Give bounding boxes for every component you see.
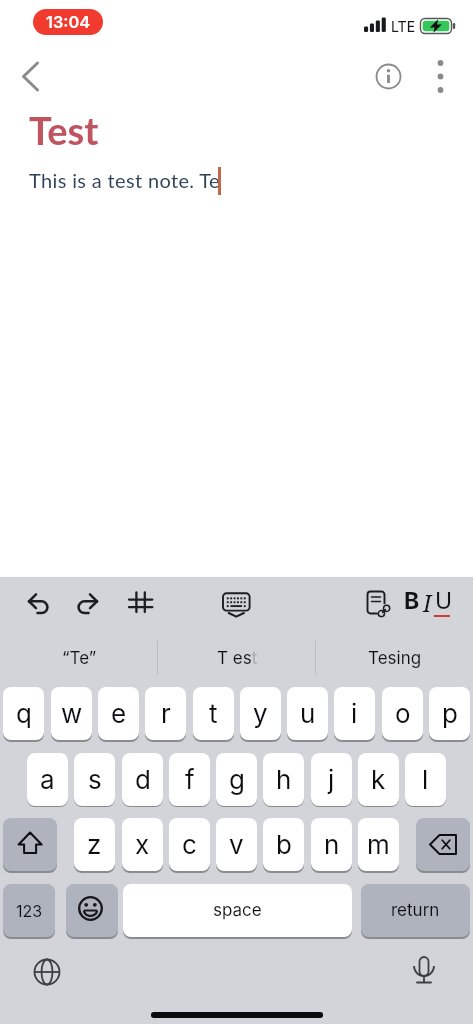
button[interactable]: g [216, 753, 257, 806]
button[interactable] [12, 56, 52, 96]
staticText: a [40, 764, 55, 795]
button[interactable]: a [27, 753, 68, 806]
staticText: z [87, 829, 102, 860]
button[interactable]: d [122, 753, 163, 806]
button[interactable]: z [74, 818, 115, 871]
button[interactable]: q [3, 687, 44, 740]
staticText: h [276, 764, 292, 795]
staticText: i [351, 698, 358, 729]
button[interactable]: k [358, 753, 399, 806]
staticText: u [300, 698, 316, 729]
staticText: l [422, 764, 429, 795]
staticText: m [367, 829, 390, 860]
staticText: j [328, 764, 335, 795]
staticText: f [185, 764, 195, 795]
button[interactable]: y [240, 687, 281, 740]
staticText: I [423, 587, 432, 618]
button[interactable]: p [429, 687, 470, 740]
button[interactable] [66, 884, 118, 937]
staticText: This is a test note. Te [29, 168, 220, 192]
button[interactable]: b [263, 818, 304, 871]
button[interactable] [28, 953, 66, 991]
staticText: r [161, 698, 171, 729]
staticText: d [135, 764, 151, 795]
staticText: e [111, 698, 127, 729]
staticText: q [16, 698, 32, 729]
staticText: p [442, 698, 458, 729]
button[interactable]: T est [158, 640, 316, 676]
button[interactable]: space [123, 884, 352, 937]
button[interactable]: l [405, 753, 446, 806]
staticText: b [276, 829, 292, 860]
button[interactable]: x [122, 818, 163, 871]
staticText: B [404, 587, 420, 615]
button[interactable] [416, 818, 470, 871]
staticText: “Te” [62, 648, 97, 669]
button[interactable]: m [358, 818, 399, 871]
button[interactable]: 13:04 [33, 9, 103, 35]
button[interactable]: o [382, 687, 423, 740]
staticText: x [135, 829, 150, 860]
button[interactable]: f [169, 753, 210, 806]
staticText: LTE [391, 18, 416, 35]
button[interactable]: e [98, 687, 139, 740]
staticText: Test [29, 107, 99, 153]
staticText: g [229, 764, 245, 795]
button[interactable]: i [334, 687, 375, 740]
button[interactable]: j [311, 753, 352, 806]
staticText: t [209, 698, 218, 729]
staticText: Tesing [368, 648, 422, 669]
button[interactable]: r [145, 687, 186, 740]
staticText: y [253, 698, 268, 729]
button[interactable]: w [51, 687, 92, 740]
staticText: w [61, 698, 83, 729]
staticText: s [88, 764, 102, 795]
button[interactable]: n [311, 818, 352, 871]
button[interactable] [24, 586, 58, 618]
staticText: o [395, 698, 411, 729]
button[interactable]: return [361, 884, 470, 937]
button[interactable]: t [193, 687, 234, 740]
button[interactable]: Tesing [316, 640, 473, 676]
button[interactable]: 123 [3, 884, 55, 937]
staticText: space [213, 900, 262, 921]
button[interactable]: u [287, 687, 328, 740]
button[interactable]: v [216, 818, 257, 871]
button[interactable]: “Te” [0, 640, 158, 676]
button[interactable] [405, 953, 443, 991]
button[interactable] [426, 60, 456, 93]
staticText: c [182, 829, 197, 860]
button[interactable] [372, 60, 405, 93]
staticText: n [324, 829, 340, 860]
button[interactable]: s [74, 753, 115, 806]
staticText: 13:04 [46, 12, 91, 32]
staticText: T est [217, 648, 258, 669]
button[interactable]: c [169, 818, 210, 871]
staticText: 123 [16, 901, 43, 920]
staticText: return [391, 900, 440, 921]
staticText: v [229, 829, 244, 860]
button[interactable] [3, 818, 57, 871]
button[interactable]: h [263, 753, 304, 806]
staticText: U [435, 587, 453, 615]
staticText: k [371, 764, 386, 795]
